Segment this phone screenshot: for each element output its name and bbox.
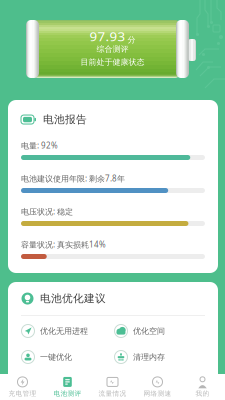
staticText: 一键优化	[40, 352, 72, 362]
button[interactable]: 一键优化	[21, 348, 114, 366]
staticText: 电量: 92%	[21, 140, 58, 151]
staticText: 容量状况: 真实损耗14%	[21, 239, 106, 250]
button[interactable]: 电池测评	[45, 374, 90, 400]
button[interactable]: 充电管理	[0, 374, 45, 400]
button[interactable]: 清理内存	[114, 348, 207, 366]
button[interactable]: 我的	[180, 374, 225, 400]
button[interactable]: 流量情况	[90, 374, 135, 400]
staticText: 电池测评	[53, 389, 81, 398]
staticText: 流量情况	[98, 389, 126, 398]
staticText: 充电管理	[8, 389, 36, 398]
staticText: 目前处于健康状态	[80, 57, 144, 67]
staticText: 清理内存	[133, 352, 165, 362]
staticText: 97.93	[89, 27, 125, 45]
staticText: 电池报告	[43, 113, 87, 126]
staticText: 我的	[195, 389, 209, 398]
staticText: 网络测速	[143, 389, 171, 398]
staticText: 分	[127, 35, 135, 45]
staticText: 综合测评	[96, 44, 128, 54]
button[interactable]: 网络测速	[135, 374, 180, 400]
staticText: 优化无用进程	[40, 326, 88, 336]
button[interactable]: 优化无用进程	[21, 322, 114, 340]
staticText: 电池优化建议	[40, 292, 106, 305]
staticText: 电压状况: 稳定	[21, 206, 73, 217]
staticText: 电池建议使用年限: 剩余7.8年	[21, 173, 125, 184]
staticText: 优化空间	[133, 326, 165, 336]
button[interactable]: 优化空间	[114, 322, 207, 340]
